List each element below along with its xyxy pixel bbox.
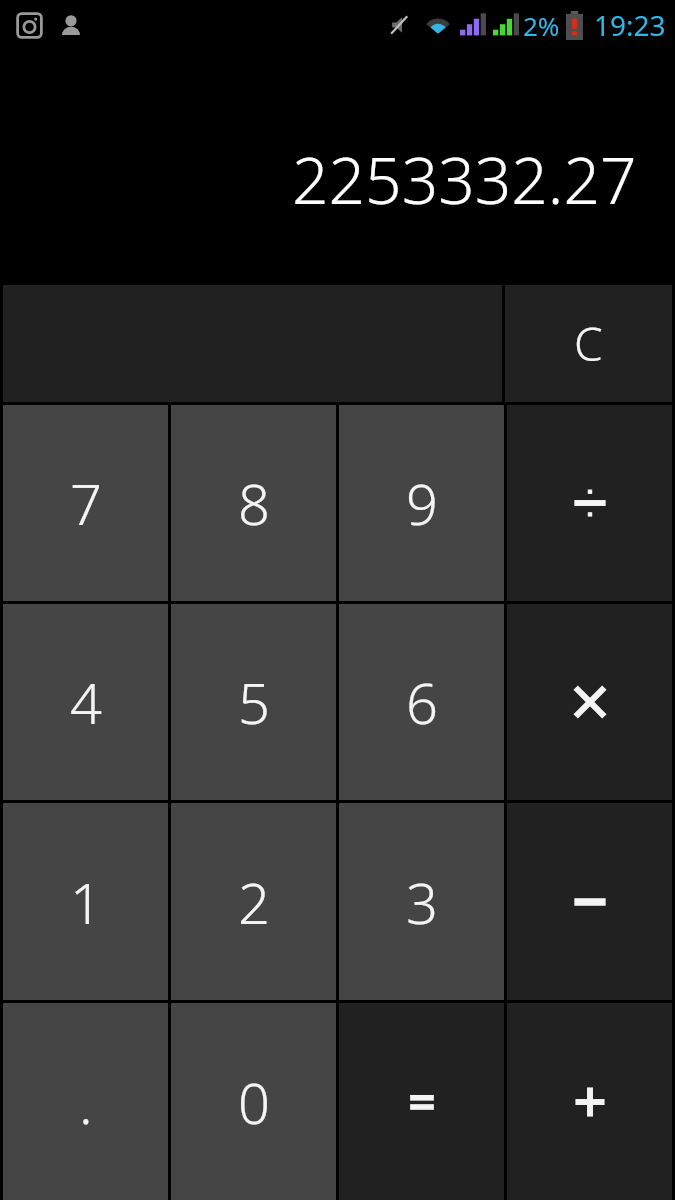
staticText: 2 <box>238 864 270 940</box>
button[interactable]: 7 <box>3 405 168 601</box>
button[interactable]: 9 <box>339 405 504 601</box>
staticText: 3 <box>406 864 438 940</box>
staticText: 2253332.27 <box>292 136 637 223</box>
button[interactable]: 6 <box>339 604 504 800</box>
button[interactable]: Add <box>507 1003 672 1200</box>
staticText: 4 <box>70 664 102 740</box>
button[interactable]: Equals <box>339 1003 504 1200</box>
button[interactable]: 3 <box>339 803 504 1000</box>
staticText: 19:23 <box>594 6 666 44</box>
button[interactable]: 5 <box>171 604 336 800</box>
button[interactable]: . <box>3 1003 168 1200</box>
staticText: 9 <box>406 465 438 541</box>
button[interactable]: 0 <box>171 1003 336 1200</box>
button[interactable]: 1 <box>3 803 168 1000</box>
button[interactable]: 4 <box>3 604 168 800</box>
staticText: 5 <box>238 664 270 740</box>
staticText: 0 <box>238 1064 270 1140</box>
staticText: 6 <box>406 664 438 740</box>
staticText: 8 <box>238 465 270 541</box>
button[interactable]: 2 <box>171 803 336 1000</box>
staticText: 2% <box>523 8 560 43</box>
button[interactable]: Multiply <box>507 604 672 800</box>
button[interactable]: C <box>505 285 672 402</box>
staticText: 7 <box>70 465 102 541</box>
staticText: . <box>79 1064 93 1140</box>
staticText: 1 <box>70 864 102 940</box>
button[interactable]: Divide <box>507 405 672 601</box>
button[interactable]: Subtract <box>507 803 672 1000</box>
staticText: C <box>574 312 603 375</box>
button[interactable]: 8 <box>171 405 336 601</box>
